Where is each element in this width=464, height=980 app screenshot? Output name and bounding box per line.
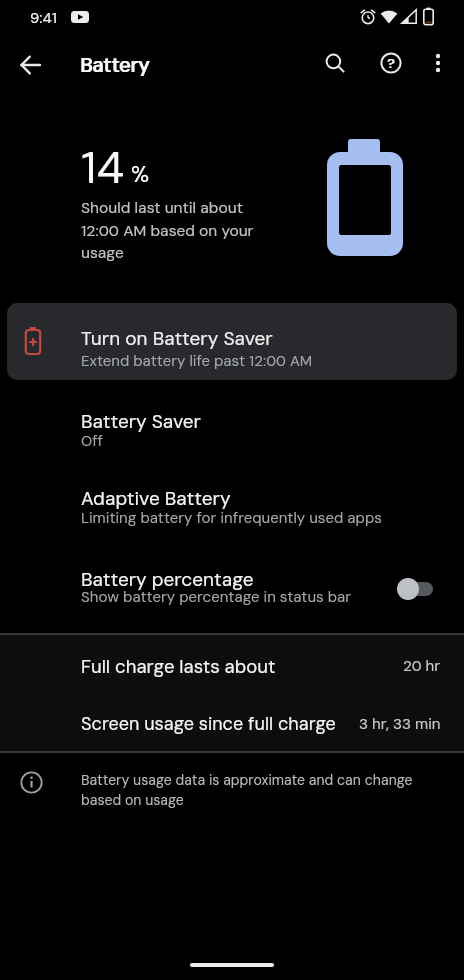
staticText: Should last until about 12:00 AM based o… bbox=[81, 198, 254, 263]
staticText: % bbox=[131, 160, 150, 189]
staticText: Show battery percentage in status bar bbox=[81, 587, 352, 607]
button[interactable] bbox=[315, 43, 355, 83]
staticText: ? bbox=[387, 55, 395, 72]
staticText: Adaptive Battery bbox=[81, 486, 231, 511]
staticText: Full charge lasts about bbox=[81, 655, 276, 679]
staticText: Off bbox=[81, 431, 104, 451]
staticText: Battery usage data is approximate and ca… bbox=[81, 771, 413, 810]
button[interactable]: Turn on Battery Saver bbox=[7, 303, 457, 380]
button[interactable]: Screen usage since full charge bbox=[0, 695, 464, 751]
staticText: Battery percentage bbox=[81, 567, 254, 592]
button[interactable]: Adaptive Battery bbox=[0, 470, 464, 550]
staticText: Extend battery life past 12:00 AM bbox=[81, 351, 313, 371]
staticText: Battery bbox=[81, 52, 151, 78]
staticText: Battery Saver bbox=[81, 409, 202, 434]
staticText: ? bbox=[388, 55, 396, 72]
button[interactable] bbox=[418, 43, 458, 83]
staticText: 20 hr bbox=[403, 656, 441, 676]
button[interactable]: Battery percentage bbox=[0, 550, 464, 633]
button[interactable]: ? bbox=[371, 43, 411, 83]
staticText: 3 hr, 33 min bbox=[359, 714, 441, 734]
button[interactable]: Battery Saver bbox=[0, 393, 464, 470]
button[interactable] bbox=[11, 45, 51, 85]
staticText: Battery bbox=[80, 52, 150, 78]
staticText: Screen usage since full charge bbox=[81, 712, 336, 735]
staticText: 14 bbox=[81, 138, 125, 197]
staticText: Limiting battery for infrequently used a… bbox=[81, 508, 382, 528]
staticText: Turn on Battery Saver bbox=[81, 326, 273, 351]
staticText: 9:41 bbox=[30, 8, 57, 28]
button[interactable]: Full charge lasts about bbox=[0, 635, 464, 695]
